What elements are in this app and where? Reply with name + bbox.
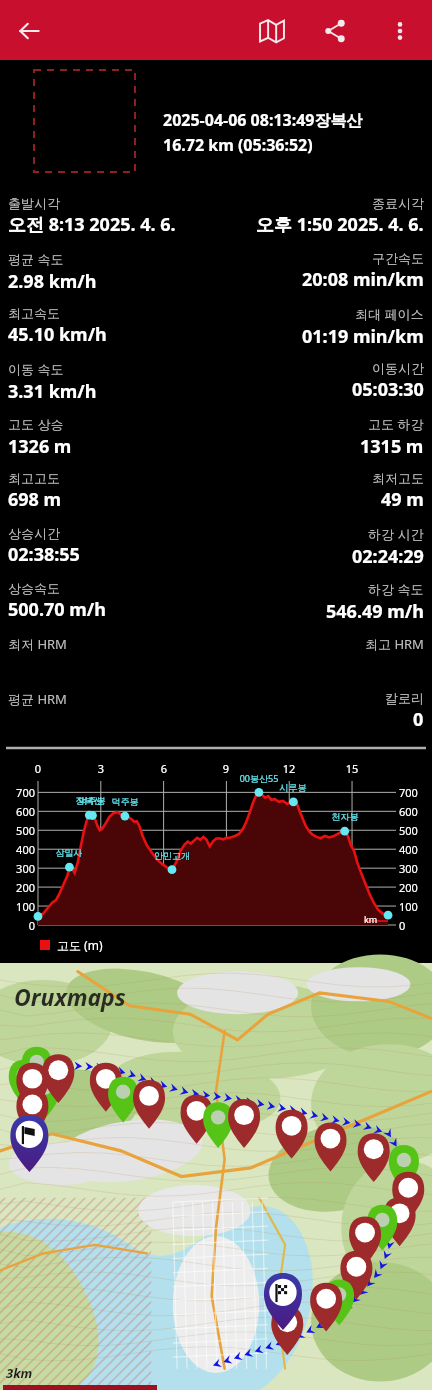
staticText: Kartendarstellung: © xyxy=(210,1387,332,1390)
button[interactable]: Back xyxy=(8,10,50,52)
staticText: 덕주봉 xyxy=(99,796,151,807)
staticText: 칼로리 xyxy=(385,690,424,706)
staticText: 천자봉 xyxy=(319,811,371,822)
staticText: 종료시각 xyxy=(372,195,424,211)
staticText: 상승시간 xyxy=(8,525,60,541)
staticText: 00봉산55 xyxy=(233,772,285,784)
staticText: 오후 1:50 2025. 4. 6. xyxy=(256,212,424,237)
staticText: 최저 HRM xyxy=(8,635,67,653)
button[interactable]: More options xyxy=(380,11,420,51)
staticText: 500 xyxy=(399,823,432,838)
staticText: 3km xyxy=(6,1364,33,1382)
staticText: 700 xyxy=(399,785,432,800)
staticText: 하강 속도 xyxy=(368,580,424,598)
staticText: 0 xyxy=(2,918,35,933)
staticText: 상승속도 xyxy=(8,580,60,596)
staticText: 1315 m xyxy=(360,434,424,459)
staticText: 구간속도 xyxy=(372,250,424,266)
staticText: 1326 m xyxy=(8,434,72,459)
staticText: 고도 (m) xyxy=(57,937,103,953)
staticText: 이동시간 xyxy=(372,360,424,376)
staticText: 최고속도 xyxy=(8,305,60,321)
staticText: 평균 속도 xyxy=(8,250,64,268)
staticText: 20:08 min/km xyxy=(302,267,424,292)
staticText: 6 xyxy=(150,761,178,776)
staticText: 200 xyxy=(399,880,432,895)
staticText: 최저고도 xyxy=(372,470,424,486)
staticText: 3.31 km/h xyxy=(8,379,97,404)
staticText: 삼밀사 xyxy=(43,847,95,858)
staticText: 9 xyxy=(212,761,240,776)
staticText: 400 xyxy=(2,842,35,857)
staticText: 49 m xyxy=(381,487,424,512)
staticText: 최대 페이스 xyxy=(355,305,424,323)
staticText: 12 xyxy=(275,761,303,776)
staticText: 400 xyxy=(399,842,432,857)
staticText: 하강 시간 xyxy=(368,525,424,543)
staticText: 45.10 km/h xyxy=(8,322,107,347)
staticText: 0 xyxy=(24,761,52,776)
staticText: 500.70 m/h xyxy=(8,597,106,622)
staticText: 698 m xyxy=(8,487,62,512)
staticText: 05:03:30 xyxy=(352,377,424,402)
staticText: 15 xyxy=(338,761,366,776)
staticText: 장복산 xyxy=(63,795,115,806)
staticText: 300 xyxy=(2,861,35,876)
staticText: 01:19 min/km xyxy=(302,324,424,349)
staticText: 고도 상승 xyxy=(8,415,64,433)
staticText: 100 xyxy=(399,899,432,914)
staticText: 오전 8:13 2025. 4. 6. xyxy=(8,212,176,237)
staticText: 0 xyxy=(413,707,424,732)
staticText: 546.49 m/h xyxy=(326,599,424,624)
staticText: 최고고도 xyxy=(8,470,60,486)
button[interactable]: Share xyxy=(315,11,355,51)
staticText: 안민고개 xyxy=(146,850,198,861)
staticText: 시루봉 xyxy=(267,782,319,793)
staticText: 600 xyxy=(399,804,432,819)
staticText: 16.72 km (05:36:52) xyxy=(163,134,313,156)
staticText: 0 xyxy=(399,918,432,933)
staticText: 600 xyxy=(2,804,35,819)
button[interactable]: Oruxmaps xyxy=(0,963,432,1390)
staticText: 2.98 km/h xyxy=(8,269,97,294)
staticText: 02:24:29 xyxy=(352,544,424,569)
staticText: 300 xyxy=(399,861,432,876)
staticText: Oruxmaps xyxy=(14,981,126,1012)
staticText: 02:38:55 xyxy=(8,542,80,567)
staticText: km xyxy=(364,913,378,925)
staticText: 출발시각 xyxy=(8,195,60,211)
staticText: 덕주봉 xyxy=(66,795,118,806)
staticText: 500 xyxy=(2,823,35,838)
staticText: 2025-04-06 08:13:49장복산 xyxy=(163,109,363,131)
staticText: 최고 HRM xyxy=(365,635,424,653)
button[interactable]: Map xyxy=(252,11,292,51)
staticText: 이동 속도 xyxy=(8,360,64,378)
staticText: 700 xyxy=(2,785,35,800)
staticText: 고도 하강 xyxy=(368,415,424,433)
staticText: 평균 HRM xyxy=(8,690,67,708)
staticText: 200 xyxy=(2,880,35,895)
staticText: 3 xyxy=(87,761,115,776)
staticText: 100 xyxy=(2,899,35,914)
